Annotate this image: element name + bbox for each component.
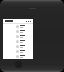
button[interactable] <box>3 39 33 44</box>
button[interactable] <box>3 54 33 59</box>
button[interactable] <box>3 29 33 34</box>
button[interactable] <box>3 34 33 39</box>
button[interactable]: Home <box>15 61 22 68</box>
button[interactable] <box>3 49 33 54</box>
button[interactable] <box>3 24 33 29</box>
button[interactable] <box>3 19 33 23</box>
button[interactable] <box>3 44 33 49</box>
